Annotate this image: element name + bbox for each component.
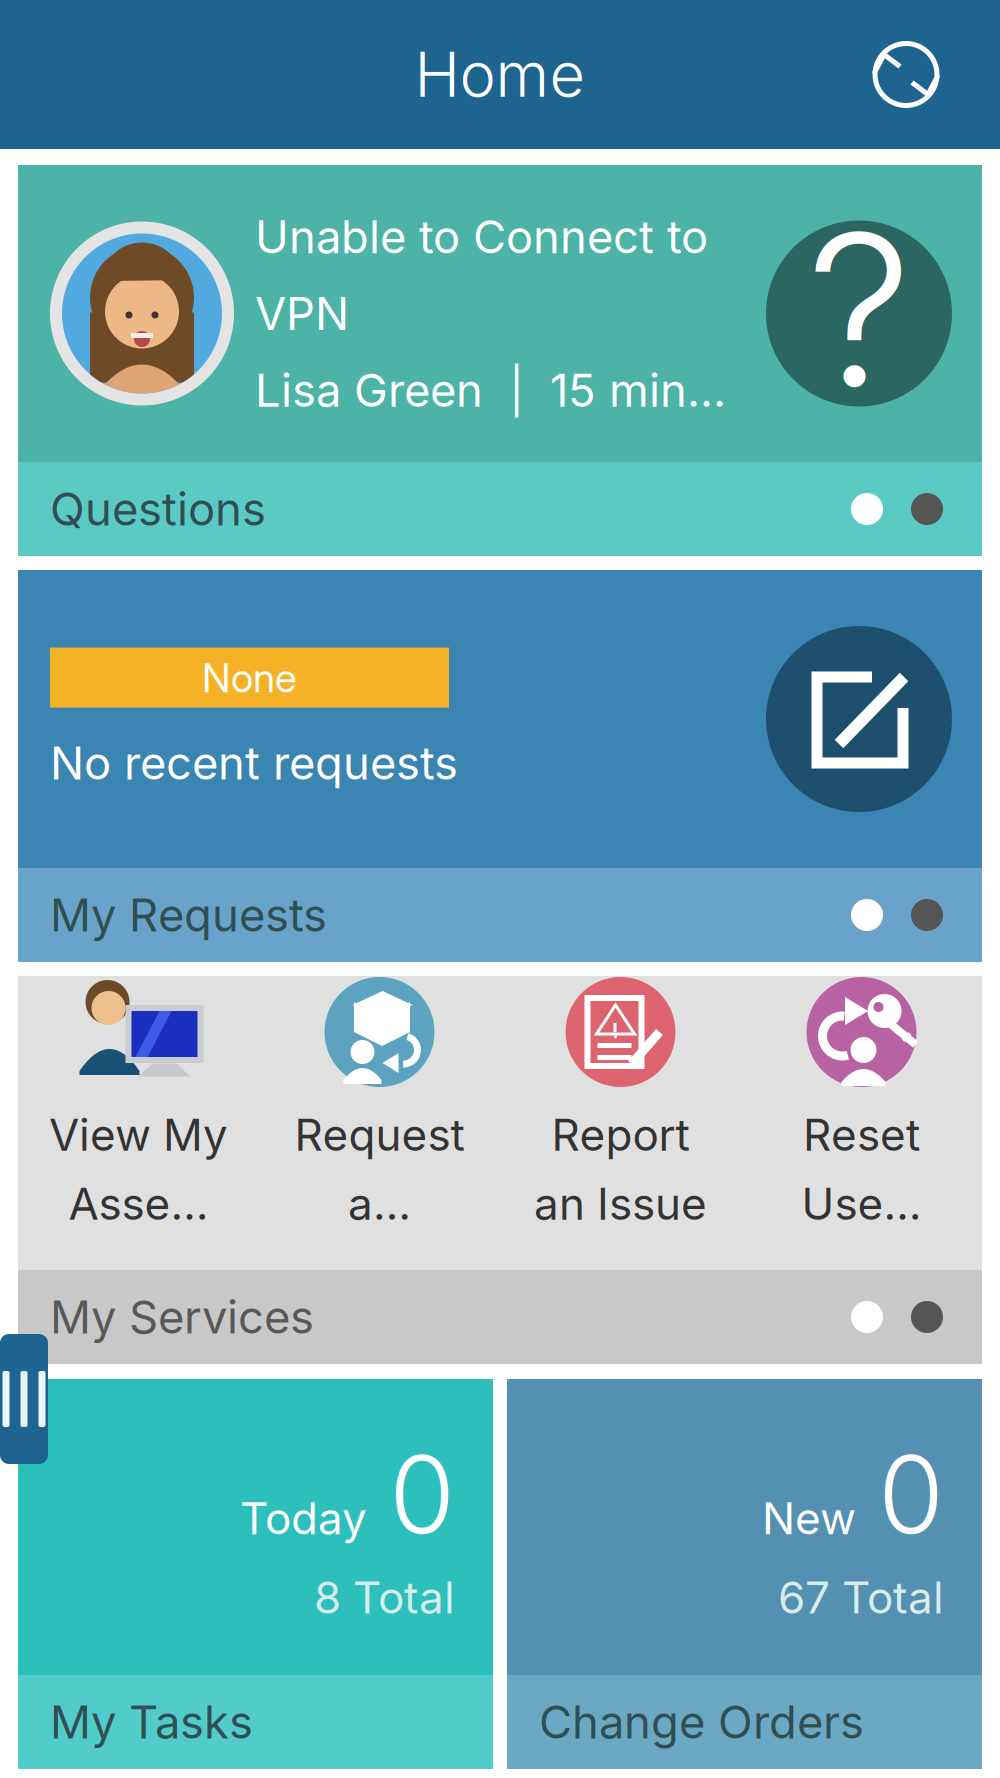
button[interactable]: Today xyxy=(18,1379,493,1769)
staticText: Home xyxy=(414,37,585,112)
staticText: Change Orders xyxy=(539,1695,864,1749)
button[interactable]: My Services xyxy=(18,1270,982,1364)
staticText: No recent requests xyxy=(50,736,458,790)
staticText: an Issue xyxy=(534,1177,707,1230)
staticText: My Tasks xyxy=(50,1695,253,1749)
button[interactable]: My Requests xyxy=(18,868,982,962)
button[interactable]: Questions xyxy=(18,462,982,556)
button[interactable]: Open menu xyxy=(0,1334,48,1464)
button[interactable]: Reset xyxy=(741,976,982,1270)
staticText: None xyxy=(202,653,297,702)
staticText: Today xyxy=(240,1492,367,1545)
button[interactable]: View My xyxy=(18,976,259,1270)
button[interactable]: New xyxy=(507,1379,982,1769)
staticText: Use… xyxy=(801,1177,921,1230)
staticText: 0 xyxy=(389,1430,455,1559)
button[interactable]: Request xyxy=(259,976,500,1270)
button[interactable]: Refresh xyxy=(846,14,966,134)
staticText: Unable to Connect to xyxy=(255,209,708,264)
staticText: My Requests xyxy=(50,888,327,942)
staticText: View My xyxy=(49,1108,228,1161)
staticText: Asse… xyxy=(68,1177,208,1230)
staticText: a… xyxy=(348,1177,411,1230)
button[interactable]: None xyxy=(18,570,982,868)
button[interactable]: Unable to Connect to xyxy=(18,165,982,462)
staticText: 67 Total xyxy=(778,1571,944,1624)
staticText: Reset xyxy=(803,1108,920,1161)
staticText: Lisa Green | 15 min... xyxy=(255,363,726,418)
staticText: My Services xyxy=(50,1290,314,1344)
staticText: Questions xyxy=(50,482,266,536)
staticText: ? xyxy=(806,182,911,437)
staticText: New xyxy=(762,1492,856,1545)
staticText: 0 xyxy=(878,1430,944,1559)
staticText: 8 Total xyxy=(314,1571,455,1624)
staticText: Request xyxy=(294,1108,464,1161)
staticText: Report xyxy=(551,1108,689,1161)
button[interactable]: Report xyxy=(500,976,741,1270)
staticText: VPN xyxy=(255,286,349,341)
